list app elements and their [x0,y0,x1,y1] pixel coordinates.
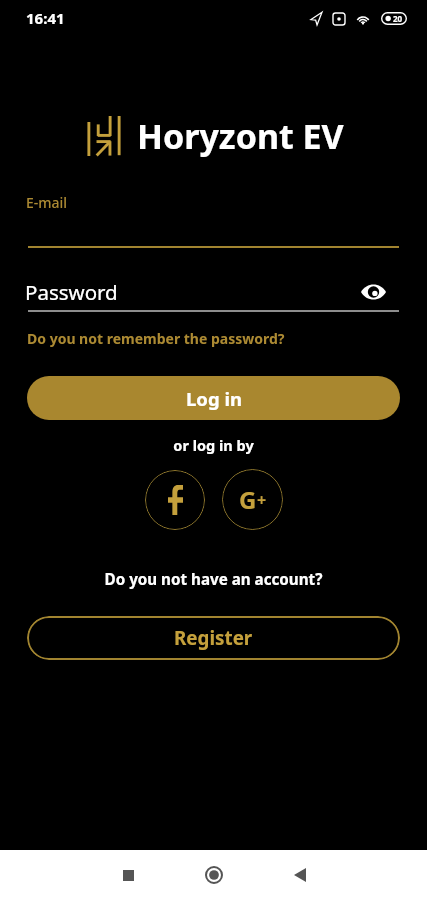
staticText: or log in by [0,435,427,455]
staticText: Horyzont EV [137,113,344,159]
staticText: G [239,483,257,516]
button[interactable]: Log in with Google Plus [222,469,283,530]
button[interactable]: Home [192,853,236,897]
staticText: 16:41 [26,8,65,28]
staticText: 20 [393,13,403,24]
button[interactable]: Log in with Facebook [145,470,205,530]
button[interactable]: Recents [106,853,150,897]
button[interactable]: Back [278,853,322,897]
staticText: Do you not remember the password? [27,329,285,348]
staticText: Do you not have an account? [0,569,427,590]
staticText: Password [25,278,366,306]
staticText: + [257,489,267,511]
button[interactable]: Log in [27,376,400,420]
staticText: Log in [186,386,242,411]
button[interactable]: Register [27,616,400,660]
staticText: Register [174,625,253,651]
button[interactable]: Show password [358,277,388,307]
staticText: E-mail [26,193,68,212]
